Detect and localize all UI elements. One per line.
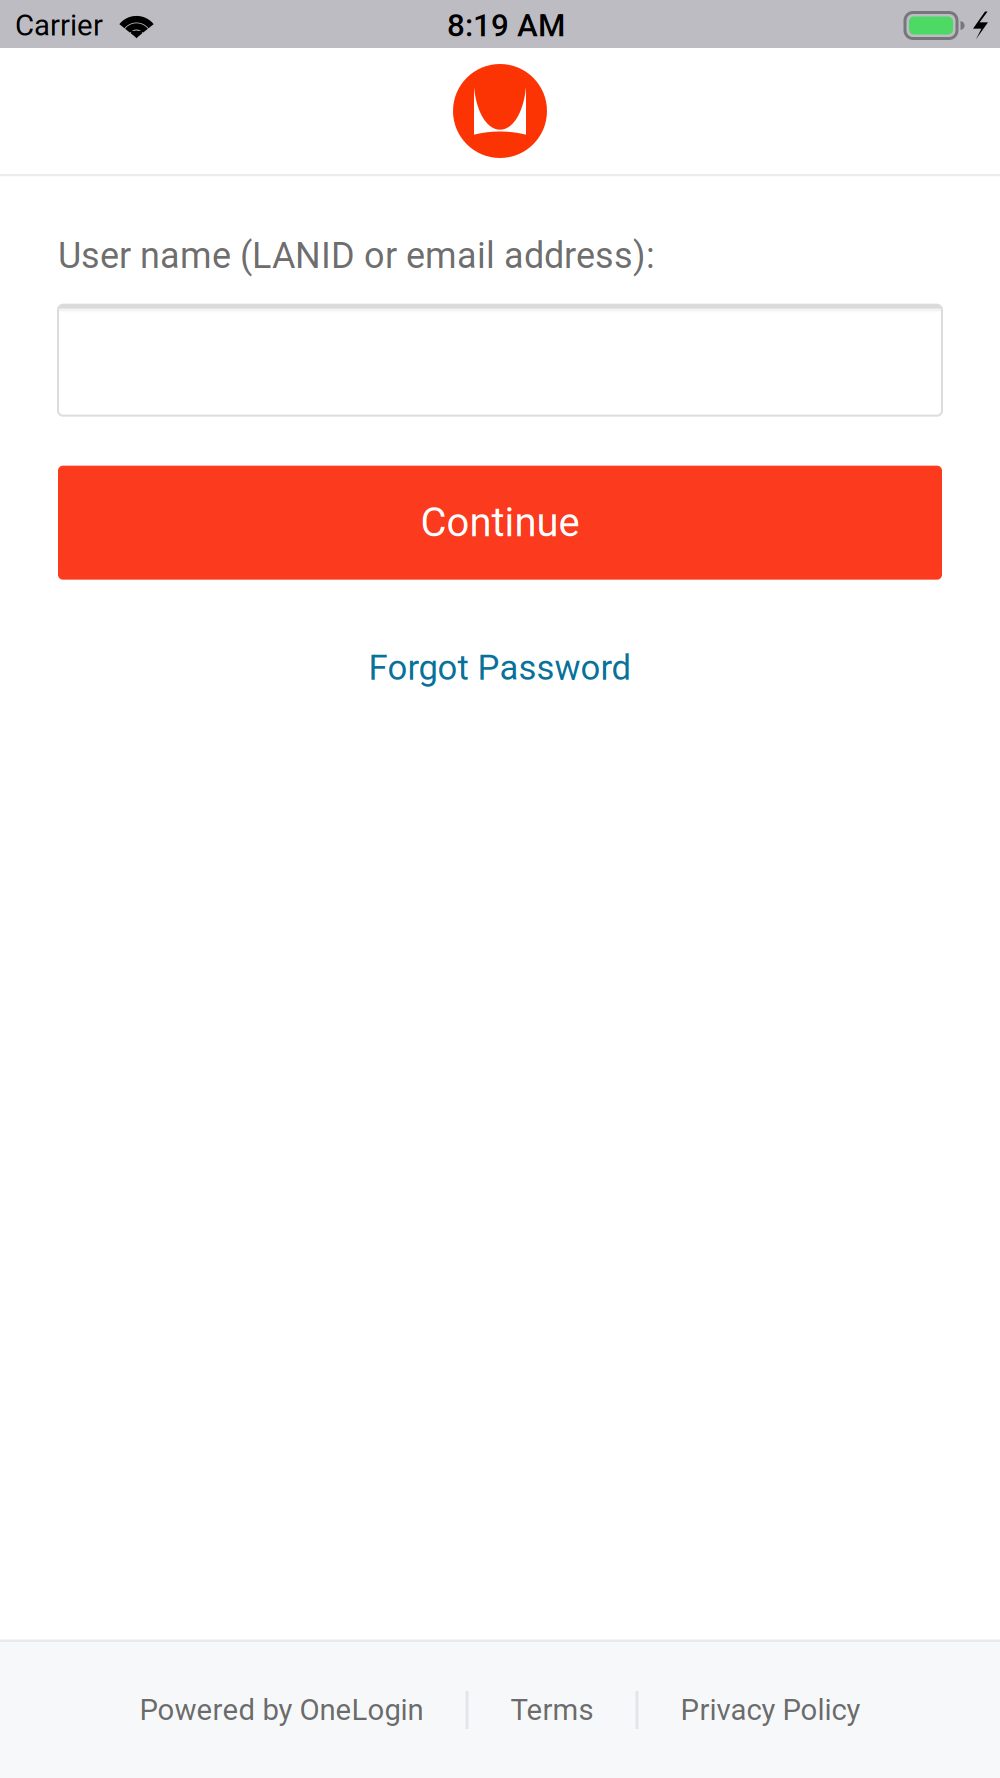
staticText: Carrier [15,8,103,43]
button[interactable]: Terms [510,1693,593,1727]
button[interactable]: Forgot Password [58,626,942,710]
staticText: Powered by OneLogin [139,1693,423,1727]
staticText: Continue [420,499,579,546]
button[interactable]: Privacy Policy [680,1693,860,1727]
staticText: Forgot Password [368,648,631,688]
staticText: 8:19 AM [447,7,565,44]
staticText: User name (LANID or email address): [58,234,655,277]
staticText: Privacy Policy [680,1693,860,1727]
button[interactable]: Powered by OneLogin [139,1693,423,1727]
button[interactable]: User name (LANID or email address) [58,305,942,416]
button[interactable]: Continue [58,466,942,580]
staticText: Terms [510,1693,593,1727]
